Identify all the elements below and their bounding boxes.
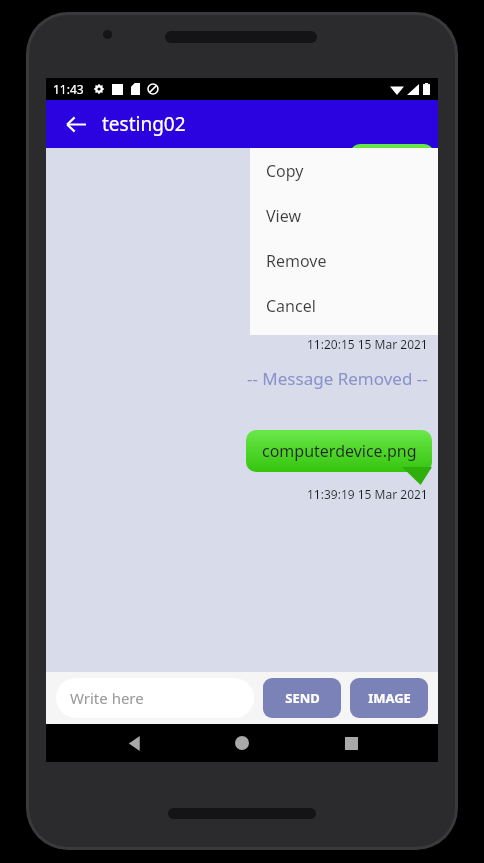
button[interactable]: Recent apps	[330, 724, 372, 762]
button[interactable]: SEND	[263, 678, 341, 718]
staticText: Remove	[266, 250, 327, 272]
staticText: SEND	[285, 689, 320, 707]
button[interactable]: Copy	[250, 148, 438, 193]
staticText: View	[266, 205, 302, 227]
button[interactable]: Cancel	[250, 283, 438, 328]
staticText: -- Message Removed --	[247, 367, 428, 390]
staticText: 11:43	[53, 81, 84, 97]
staticText: computerdevice.png	[262, 440, 417, 462]
button[interactable]: Remove	[250, 238, 438, 283]
staticText: IMAGE	[368, 689, 411, 707]
button[interactable]: Back	[54, 103, 96, 145]
staticText: 11:20:15 15 Mar 2021	[307, 336, 428, 352]
button[interactable]: View	[250, 193, 438, 238]
button[interactable]: Home	[221, 724, 263, 762]
staticText: Cancel	[266, 295, 316, 317]
button[interactable]: IMAGE	[350, 678, 428, 718]
staticText: testing02	[102, 111, 186, 137]
button[interactable]: computerdevice.png	[246, 430, 432, 472]
staticText: Write here	[70, 688, 144, 708]
staticText: Copy	[266, 160, 304, 182]
button[interactable]: Back	[113, 724, 155, 762]
button[interactable]: Write here	[56, 678, 254, 718]
staticText: 11:39:19 15 Mar 2021	[307, 486, 428, 502]
